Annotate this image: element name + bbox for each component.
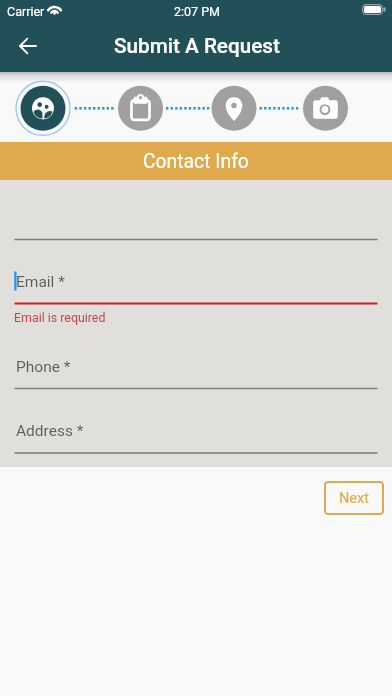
staticText: Phone * [16,358,71,376]
staticText: 2:07 PM [174,4,221,19]
button[interactable]: Address * [0,413,392,453]
staticText: Submit A Request [114,34,280,58]
staticText: Email * [16,273,65,291]
button[interactable]: Phone * [0,349,392,389]
staticText: Next [339,490,369,507]
button[interactable]: Name field [0,200,392,240]
staticText: Contact Info [143,150,249,173]
button[interactable]: Back [7,26,47,66]
staticText: Email is required [14,310,106,325]
button[interactable]: Email * [0,264,392,304]
staticText: Carrier [7,4,45,19]
button[interactable]: Next [324,481,384,515]
staticText: Address * [16,422,84,440]
